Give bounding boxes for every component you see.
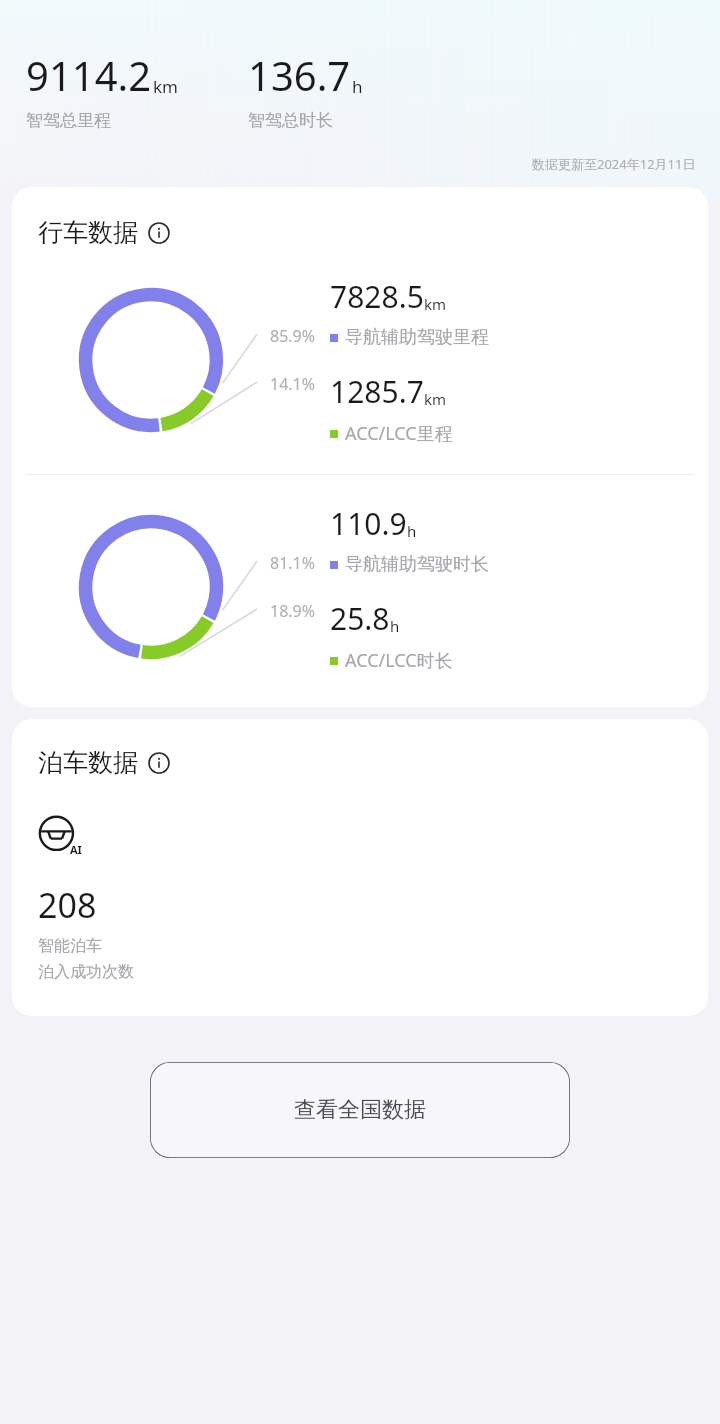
staticText: 110.9: [330, 503, 407, 544]
staticText: ACC/LCC时长: [345, 648, 453, 673]
button[interactable]: 查看全国数据: [150, 1062, 570, 1158]
staticText: 14.1%: [270, 373, 316, 395]
staticText: 7828.5: [330, 276, 424, 317]
staticText: 泊车数据: [38, 747, 138, 778]
staticText: 25.8: [330, 598, 390, 639]
staticText: 查看全国数据: [294, 1096, 426, 1124]
staticText: 智能泊车: [38, 936, 102, 956]
staticText: ACC/LCC里程: [345, 421, 453, 446]
other: Info: [148, 222, 170, 244]
staticText: 行车数据: [38, 217, 138, 248]
staticText: 85.9%: [270, 325, 316, 347]
staticText: 数据更新至2024年12月11日: [532, 155, 696, 173]
staticText: km: [424, 389, 447, 409]
staticText: 208: [38, 882, 97, 928]
other: Info: [148, 752, 170, 774]
staticText: h: [352, 75, 363, 98]
button[interactable]: 行车数据: [38, 217, 170, 248]
staticText: h: [390, 616, 400, 636]
staticText: 智驾总时长: [248, 110, 333, 131]
staticText: 智驾总里程: [26, 110, 111, 131]
staticText: 导航辅助驾驶里程: [345, 326, 489, 349]
staticText: 81.1%: [270, 552, 316, 574]
staticText: AI: [70, 842, 82, 857]
staticText: km: [153, 75, 178, 98]
staticText: km: [424, 294, 447, 314]
staticText: 18.9%: [270, 600, 316, 622]
other: Smart parking: [38, 814, 84, 860]
staticText: h: [407, 521, 417, 541]
staticText: 导航辅助驾驶时长: [345, 553, 489, 576]
button[interactable]: 泊车数据: [38, 747, 170, 778]
staticText: 136.7: [248, 48, 351, 102]
staticText: 9114.2: [26, 48, 152, 102]
staticText: 1285.7: [330, 371, 424, 412]
staticText: 泊入成功次数: [38, 962, 134, 982]
